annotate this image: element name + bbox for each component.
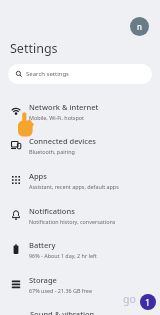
- staticText: Connected devices: [29, 136, 96, 146]
- staticText: Battery: [29, 240, 56, 250]
- button[interactable]: Sound & vibration: [0, 301, 160, 315]
- button[interactable]: Network & internet: [0, 94, 160, 128]
- staticText: Notification history, conversations: [29, 218, 116, 225]
- staticText: Bluetooth, pairing: [29, 148, 75, 155]
- staticText: Assistant, recent apps, default apps: [29, 183, 119, 190]
- button[interactable]: Notifications: [0, 198, 160, 232]
- button[interactable]: Battery: [0, 232, 160, 266]
- staticText: Sound & vibration: [30, 309, 95, 315]
- button[interactable]: Connected devices: [0, 128, 160, 162]
- staticText: Network & internet: [29, 102, 99, 112]
- staticText: Mobile, Wi-Fi, hotspot: [29, 114, 84, 121]
- staticText: 96% - About 1 day, 2 hr left: [29, 252, 97, 259]
- staticText: 1: [145, 296, 151, 308]
- staticText: Storage: [29, 275, 57, 285]
- staticText: Settings: [10, 40, 58, 57]
- staticText: 67% used - 21.36 GB free: [29, 287, 92, 294]
- staticText: n: [137, 21, 142, 32]
- staticText: Apps: [29, 171, 47, 181]
- button[interactable]: Apps: [0, 163, 160, 197]
- staticText: Search settings: [26, 70, 69, 78]
- button[interactable]: n: [130, 17, 149, 36]
- staticText: go: [123, 292, 136, 306]
- button[interactable]: Search settings: [8, 64, 152, 84]
- staticText: Notifications: [29, 206, 75, 216]
- button[interactable]: Storage: [0, 267, 160, 301]
